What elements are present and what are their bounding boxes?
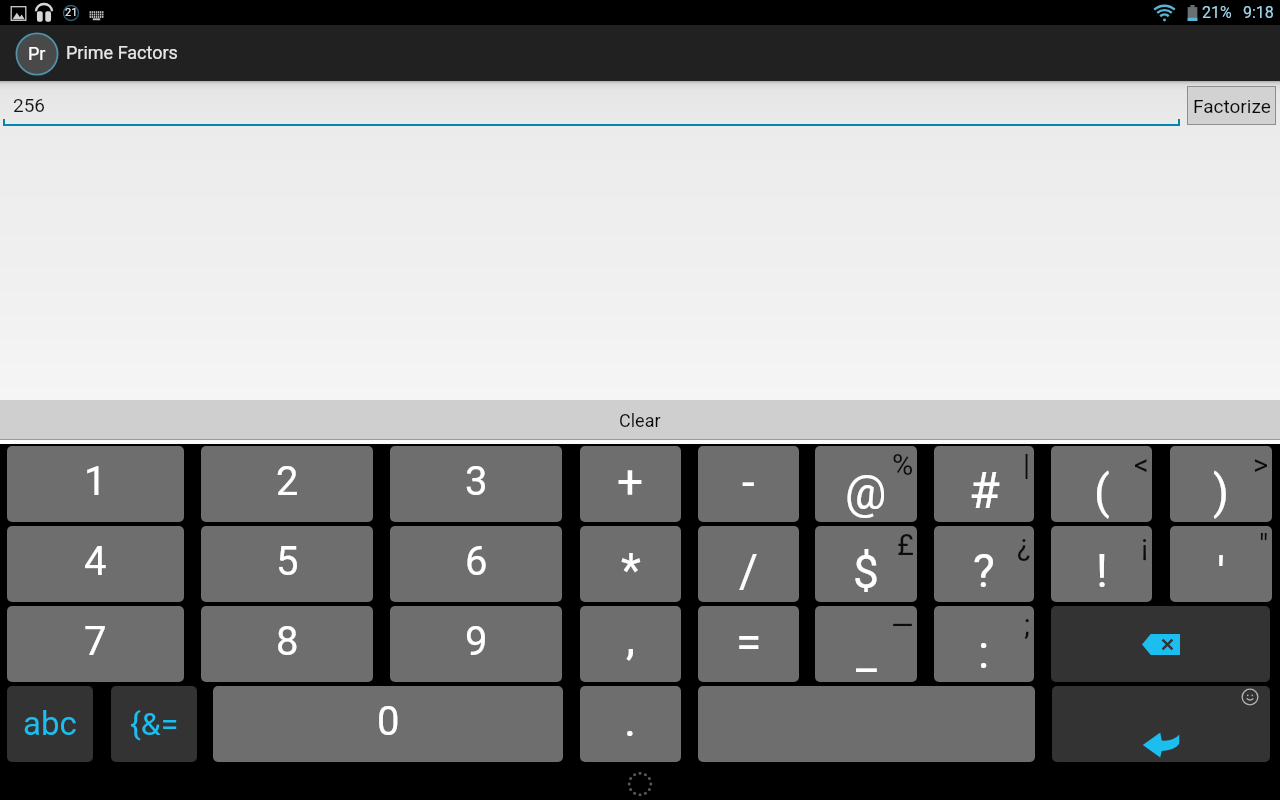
button[interactable]: -: [698, 446, 799, 522]
button[interactable]: =: [698, 606, 799, 682]
staticText: @: [845, 466, 887, 520]
staticText: 3: [465, 458, 488, 505]
button[interactable]: #: [934, 446, 1034, 522]
staticText: ;: [1024, 608, 1031, 642]
button[interactable]: _: [815, 606, 917, 682]
button[interactable]: Clear: [0, 400, 1280, 440]
staticText: Pr: [28, 43, 46, 64]
staticText: 9:18: [1243, 3, 1274, 22]
staticText: 21%: [1202, 3, 1232, 22]
staticText: >: [1253, 448, 1269, 482]
button[interactable]: *: [580, 526, 681, 602]
button[interactable]: !: [1051, 526, 1152, 602]
button[interactable]: abc: [7, 686, 93, 762]
staticText: £: [897, 528, 914, 562]
button[interactable]: 4: [7, 526, 184, 602]
staticText: #: [969, 462, 1000, 521]
button[interactable]: ): [1170, 446, 1272, 522]
button[interactable]: +: [580, 446, 681, 522]
button[interactable]: @: [815, 446, 917, 522]
button[interactable]: 1: [7, 446, 184, 522]
button[interactable]: $: [815, 526, 917, 602]
staticText: ?: [973, 544, 995, 598]
staticText: 256: [13, 94, 46, 116]
staticText: .: [624, 693, 637, 747]
button[interactable]: 8: [201, 606, 373, 682]
staticText: _: [856, 626, 877, 680]
staticText: $: [853, 545, 879, 599]
button[interactable]: Factorize: [1188, 87, 1275, 124]
button[interactable]: ,: [580, 606, 681, 682]
button[interactable]: ?: [934, 526, 1034, 602]
button[interactable]: 2: [201, 446, 373, 522]
button[interactable]: 6: [390, 526, 562, 602]
staticText: +: [617, 455, 644, 509]
staticText: ": [1259, 528, 1269, 562]
staticText: 2: [276, 458, 299, 505]
staticText: %: [892, 448, 914, 482]
staticText: abc: [23, 704, 77, 743]
staticText: |: [1023, 448, 1031, 482]
staticText: Prime Factors: [66, 42, 178, 63]
staticText: Factorize: [1193, 95, 1271, 117]
staticText: =: [736, 615, 762, 669]
button[interactable]: /: [698, 526, 799, 602]
button[interactable]: Enter: [1052, 686, 1270, 762]
button[interactable]: :: [934, 606, 1034, 682]
staticText: -: [742, 455, 755, 509]
staticText: 0: [377, 698, 400, 745]
staticText: *: [621, 543, 641, 597]
staticText: (: [1094, 465, 1110, 519]
staticText: /: [739, 544, 758, 598]
staticText: —: [891, 608, 914, 642]
staticText: 5: [276, 538, 299, 585]
staticText: 8: [276, 618, 299, 665]
button[interactable]: ': [1170, 526, 1272, 602]
button[interactable]: (: [1051, 446, 1152, 522]
staticText: !: [1096, 544, 1108, 598]
staticText: :: [978, 625, 990, 679]
button[interactable]: 256: [0, 81, 1183, 127]
staticText: ): [1213, 465, 1230, 519]
staticText: 9: [465, 618, 488, 665]
staticText: ¡: [1141, 528, 1149, 562]
staticText: 1: [84, 458, 107, 505]
staticText: ,: [626, 611, 636, 665]
staticText: 7: [84, 618, 107, 665]
button[interactable]: {&=: [111, 686, 197, 762]
button[interactable]: 0: [213, 686, 563, 762]
button[interactable]: Delete: [1051, 606, 1270, 682]
staticText: ': [1217, 547, 1226, 601]
button[interactable]: 5: [201, 526, 373, 602]
staticText: {&=: [130, 705, 179, 743]
staticText: Clear: [619, 410, 661, 431]
staticText: 21: [65, 6, 78, 19]
button[interactable]: 9: [390, 606, 562, 682]
button[interactable]: 3: [390, 446, 562, 522]
staticText: <: [1134, 448, 1149, 482]
button[interactable]: App icon: [16, 33, 58, 75]
button[interactable]: 7: [7, 606, 184, 682]
staticText: 4: [84, 538, 107, 585]
button[interactable]: .: [580, 686, 681, 762]
staticText: ¿: [1017, 528, 1031, 562]
staticText: 6: [465, 538, 488, 585]
